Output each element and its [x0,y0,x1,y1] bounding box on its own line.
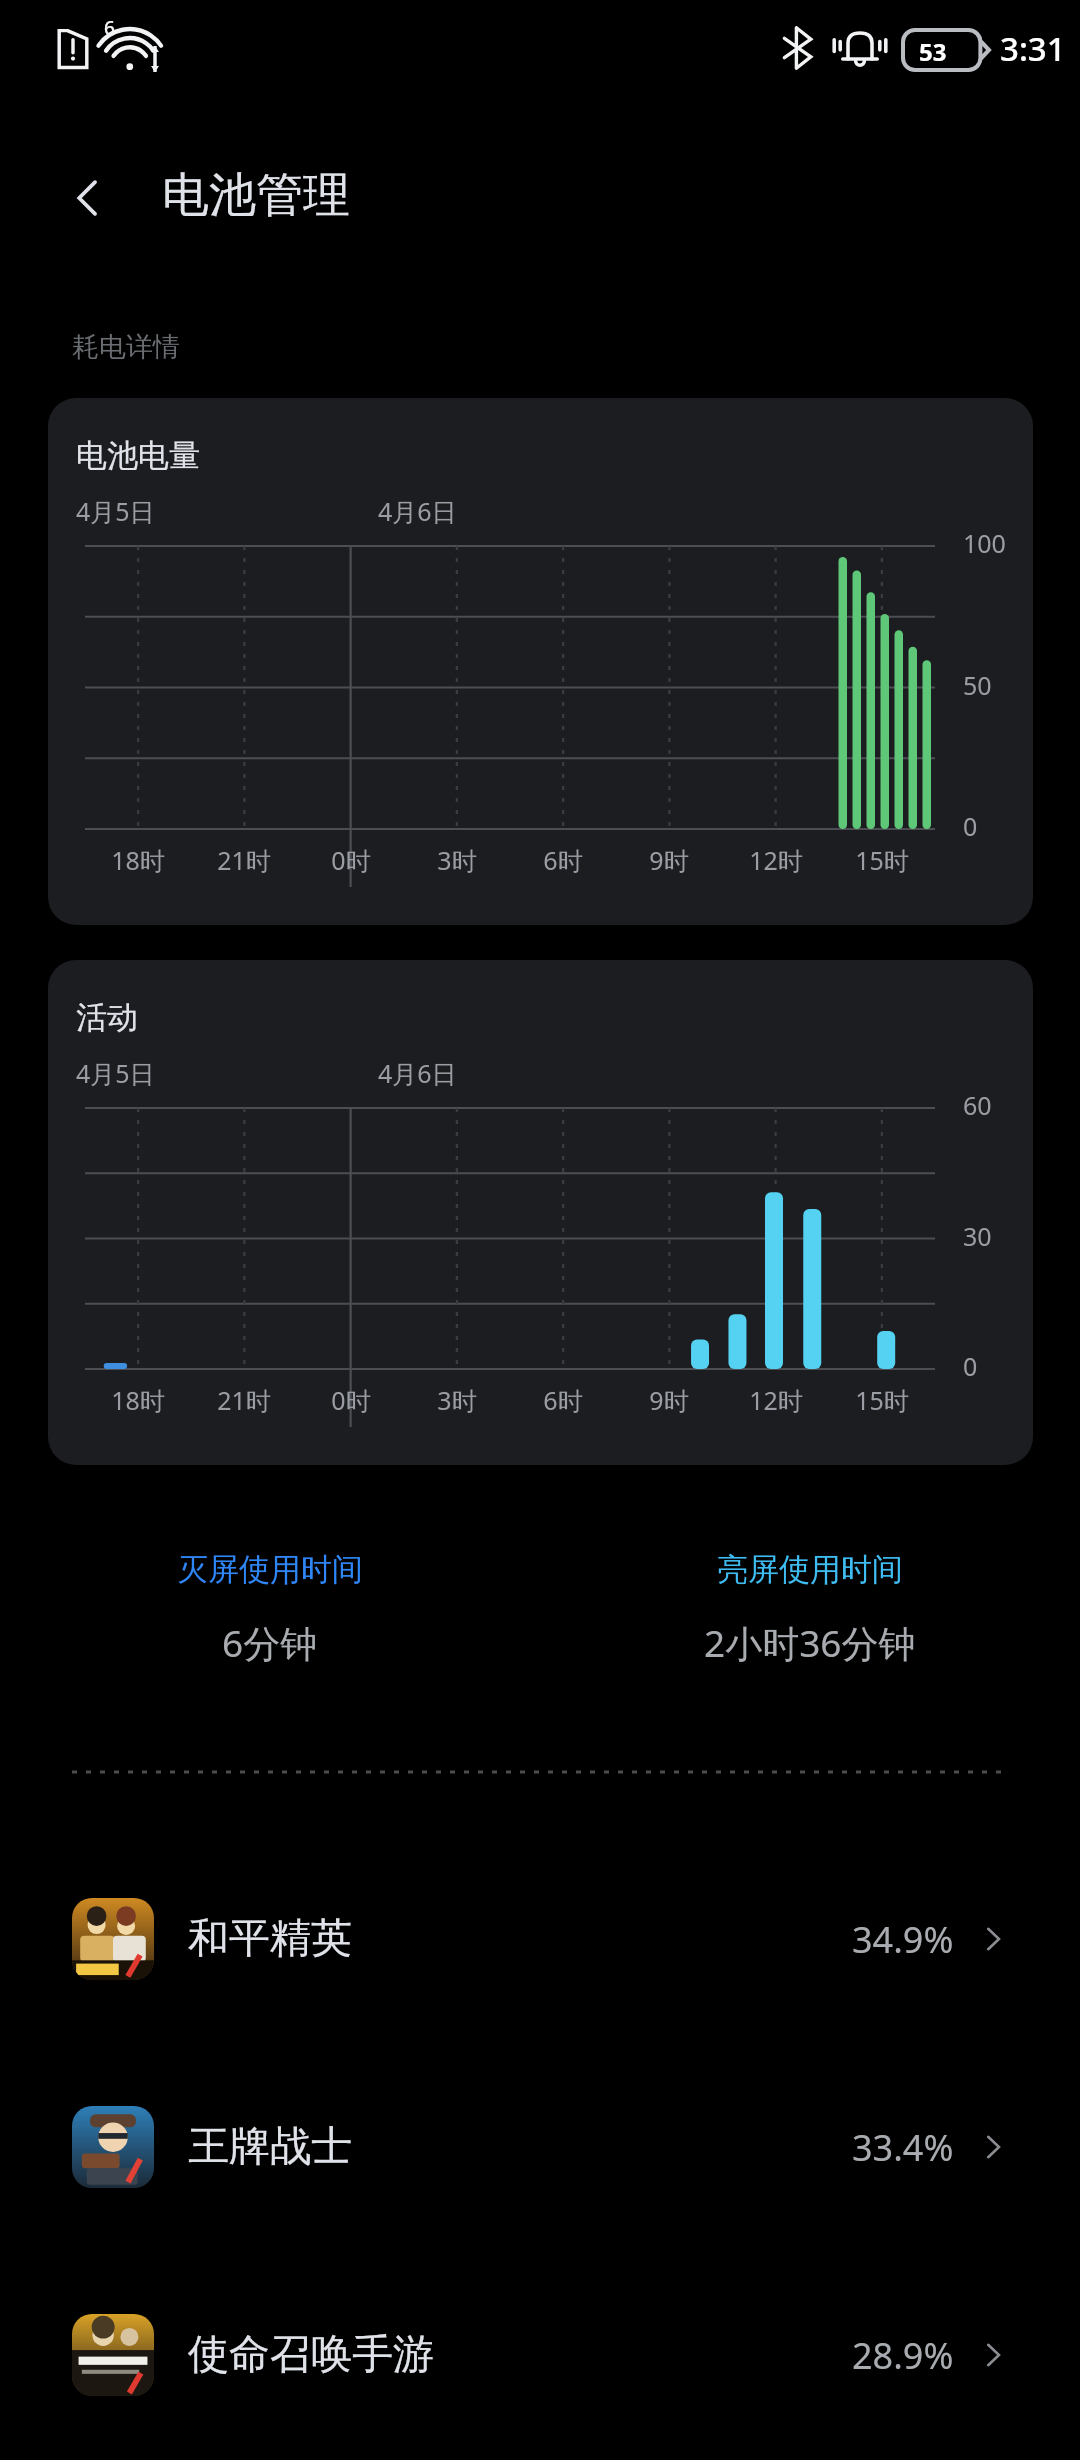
staticText: 4月5日 [76,494,155,528]
staticText: 18时 [94,1383,182,1417]
staticText: 33.4% [852,2123,954,2172]
staticText: 电池电量 [76,436,200,475]
staticText: 0时 [307,1383,395,1417]
button[interactable]: 亮屏使用时间 [540,1550,1080,1668]
staticText: 100 [963,526,1006,560]
staticText: 6时 [519,1383,607,1417]
button[interactable]: 灭屏使用时间 [0,1550,540,1668]
staticText: 4月6日 [378,494,457,528]
staticText: 9时 [625,843,713,877]
staticText: 和平精英 [188,1913,352,1965]
staticText: 21时 [200,843,288,877]
button[interactable]: 电池电量 [48,398,1033,925]
staticText: 0 [963,1349,978,1383]
staticText: 34.9% [852,1915,954,1964]
staticText: 3时 [413,843,501,877]
staticText: 0 [963,809,978,843]
button[interactable]: 和平精英 [0,1864,1080,2014]
staticText: 王牌战士 [188,2121,352,2173]
staticText: 50 [963,668,992,702]
staticText: 0时 [307,843,395,877]
staticText: 灭屏使用时间 [177,1550,363,1589]
staticText: 53 [919,35,947,68]
staticText: 28.9% [852,2331,954,2380]
staticText: 活动 [76,998,138,1037]
staticText: 21时 [200,1383,288,1417]
staticText: 12时 [732,1383,820,1417]
staticText: 15时 [838,843,926,877]
button[interactable]: Back [40,150,136,246]
staticText: 6分钟 [222,1617,318,1668]
staticText: 3:31 [1000,26,1066,71]
staticText: 18时 [94,843,182,877]
staticText: 30 [963,1219,992,1253]
staticText: 使命召唤手游 [188,2329,434,2381]
button[interactable]: 王牌战士 [0,2072,1080,2222]
button[interactable]: 使命召唤手游 [0,2280,1080,2430]
staticText: 耗电详情 [72,330,180,364]
staticText: 电池管理 [162,166,350,225]
staticText: 60 [963,1088,992,1122]
button[interactable]: 活动 [48,960,1033,1465]
staticText: 6 [104,15,115,41]
staticText: 亮屏使用时间 [717,1550,903,1589]
staticText: 4月6日 [378,1056,457,1090]
staticText: 2小时36分钟 [704,1617,916,1668]
staticText: 15时 [838,1383,926,1417]
staticText: 3时 [413,1383,501,1417]
staticText: 9时 [625,1383,713,1417]
staticText: 4月5日 [76,1056,155,1090]
staticText: 6时 [519,843,607,877]
staticText: 12时 [732,843,820,877]
